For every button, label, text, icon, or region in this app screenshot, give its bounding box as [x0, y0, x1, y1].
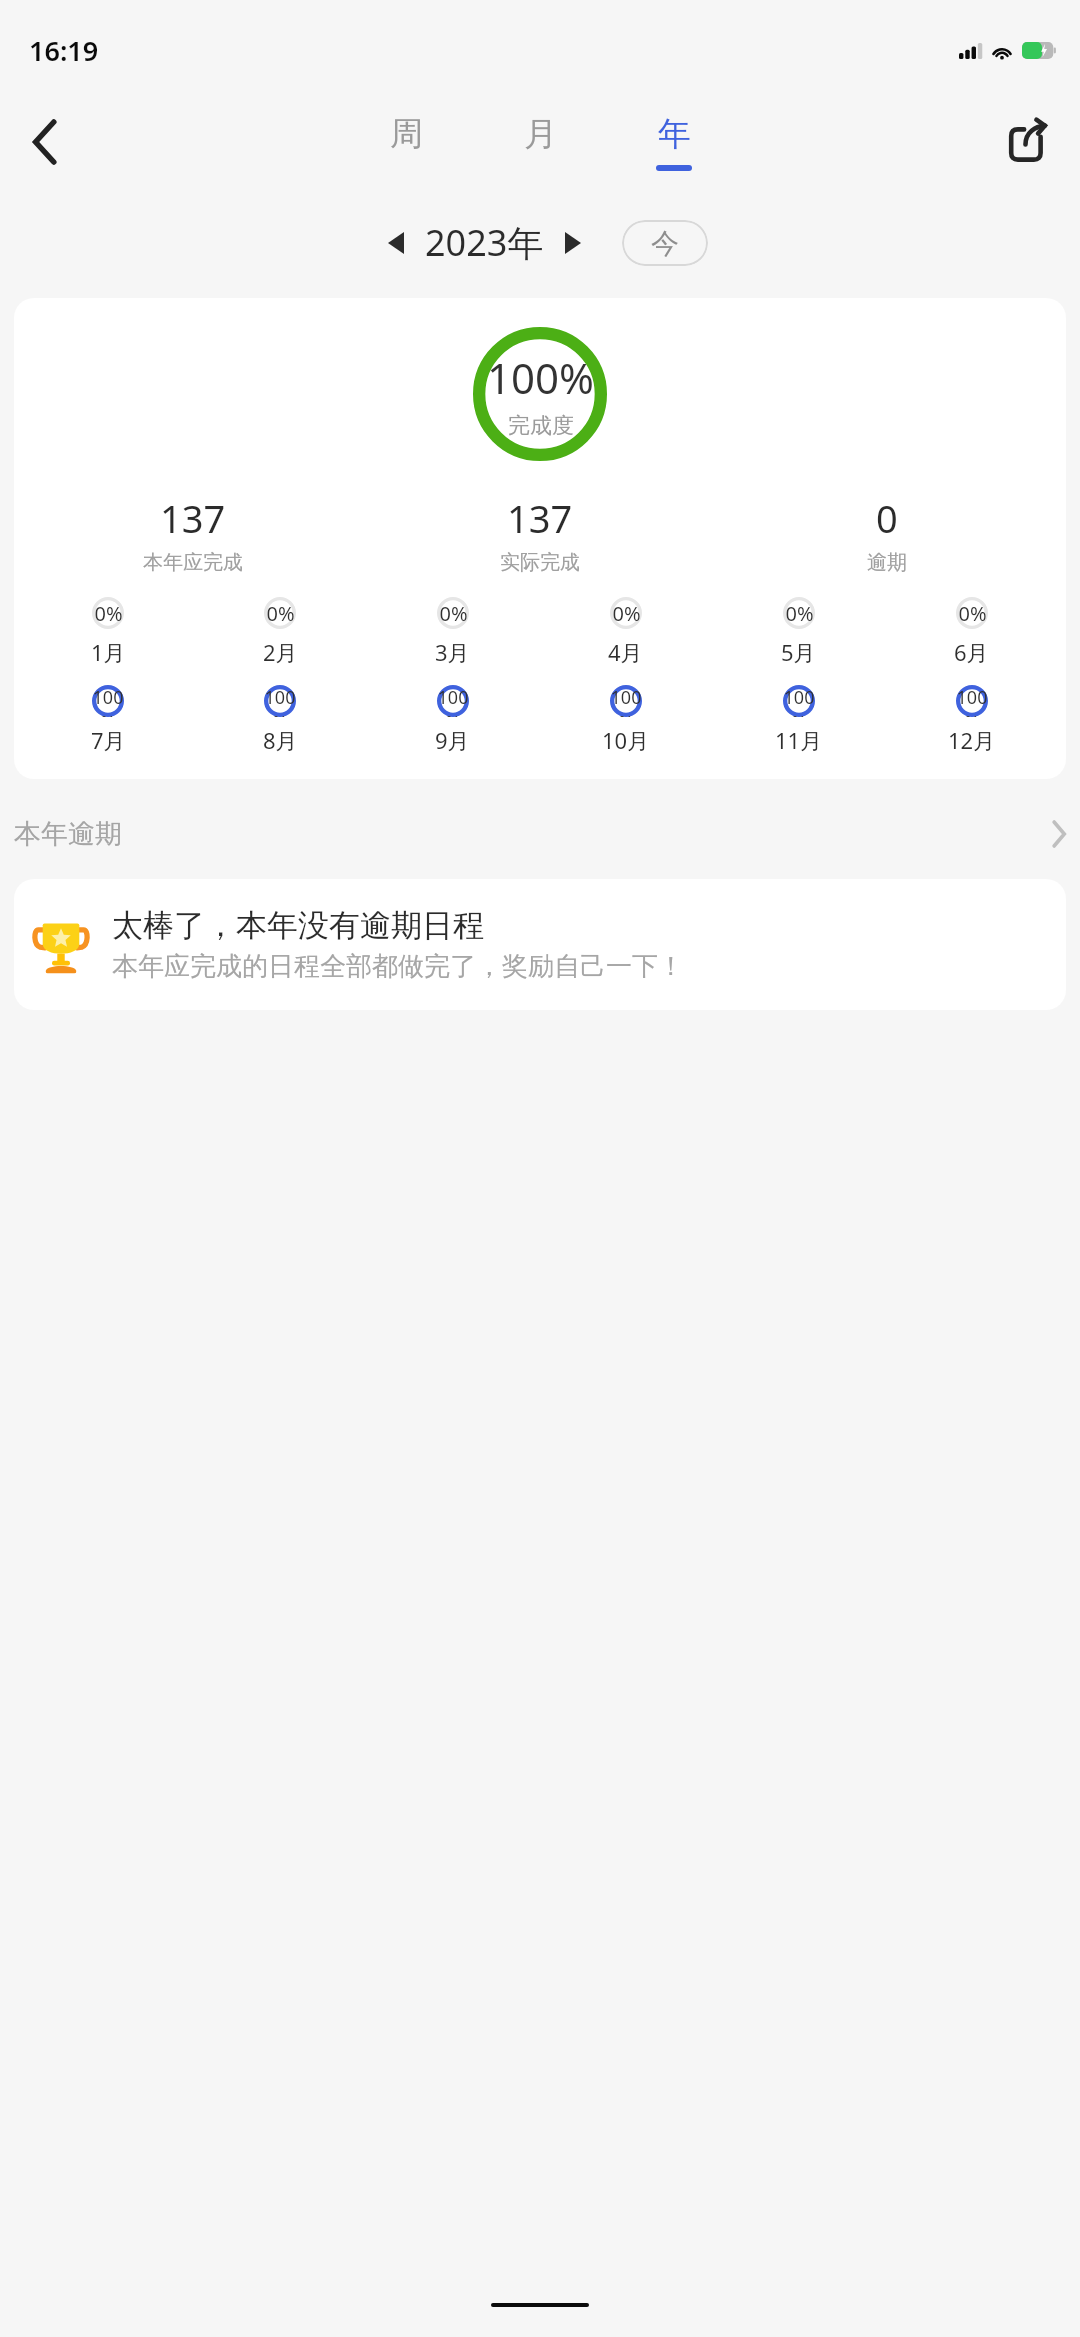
staticText: 0%: [266, 600, 295, 627]
button[interactable]: 137: [20, 490, 366, 577]
staticText: 137: [507, 492, 573, 544]
staticText: 100%: [610, 685, 642, 717]
button[interactable]: 100%: [14, 298, 1066, 779]
button[interactable]: 100%: [712, 685, 885, 755]
staticText: 逾期: [867, 550, 907, 575]
button[interactable]: Back: [10, 106, 82, 178]
button[interactable]: Trophy: [14, 879, 1066, 1010]
button[interactable]: 周: [370, 109, 442, 175]
button[interactable]: 0%: [194, 597, 366, 667]
button[interactable]: 0: [713, 490, 1060, 577]
button[interactable]: 0%: [366, 597, 539, 667]
button[interactable]: 今: [622, 220, 708, 266]
staticText: 0%: [612, 600, 641, 627]
staticText: 0%: [785, 600, 814, 627]
staticText: 100%: [783, 685, 815, 717]
button[interactable]: Previous year: [373, 220, 419, 266]
button[interactable]: 本年逾期: [0, 805, 1080, 863]
staticText: 8月: [263, 725, 298, 755]
button[interactable]: 100%: [194, 685, 366, 755]
button[interactable]: 137: [366, 490, 713, 577]
staticText: 完成度: [508, 412, 574, 440]
staticText: 100%: [956, 685, 988, 717]
staticText: 4月: [608, 637, 643, 667]
button[interactable]: 0%: [885, 597, 1058, 667]
button[interactable]: Share: [990, 104, 1066, 180]
button[interactable]: 年: [638, 109, 710, 175]
staticText: 137: [160, 492, 226, 544]
staticText: 0: [876, 492, 898, 544]
staticText: 6月: [954, 637, 989, 667]
staticText: 实际完成: [500, 550, 580, 575]
staticText: 太棒了，本年没有逾期日程: [112, 906, 484, 945]
button[interactable]: 100%: [366, 685, 539, 755]
staticText: 10月: [602, 725, 650, 755]
staticText: 11月: [775, 725, 823, 755]
staticText: 周: [390, 113, 423, 155]
staticText: 今: [651, 226, 679, 261]
button[interactable]: 月: [504, 109, 576, 175]
button[interactable]: 2023年: [425, 218, 544, 267]
staticText: 月: [524, 113, 557, 155]
button[interactable]: 100%: [539, 685, 712, 755]
staticText: 本年逾期: [14, 817, 122, 851]
staticText: 本年应完成: [143, 550, 243, 575]
button[interactable]: Next year: [550, 220, 596, 266]
button[interactable]: 0%: [712, 597, 885, 667]
button[interactable]: 0%: [539, 597, 712, 667]
staticText: 100%: [264, 685, 296, 717]
staticText: 年: [658, 113, 691, 155]
other: Trophy: [30, 914, 92, 976]
staticText: 0%: [439, 600, 468, 627]
button[interactable]: 100%: [22, 685, 194, 755]
staticText: 1月: [91, 637, 126, 667]
staticText: 2月: [263, 637, 298, 667]
staticText: 0%: [94, 600, 123, 627]
staticText: 本年应完成的日程全部都做完了，奖励自己一下！: [112, 950, 684, 983]
button[interactable]: 0%: [22, 597, 194, 667]
staticText: 100%: [487, 349, 594, 406]
staticText: 12月: [948, 725, 996, 755]
staticText: 100%: [437, 685, 469, 717]
staticText: 9月: [435, 725, 470, 755]
staticText: 16:19: [29, 32, 99, 69]
staticText: 0%: [958, 600, 987, 627]
button[interactable]: 100%: [885, 685, 1058, 755]
staticText: 5月: [781, 637, 816, 667]
staticText: 7月: [91, 725, 126, 755]
staticText: 3月: [435, 637, 470, 667]
staticText: 100%: [92, 685, 124, 717]
